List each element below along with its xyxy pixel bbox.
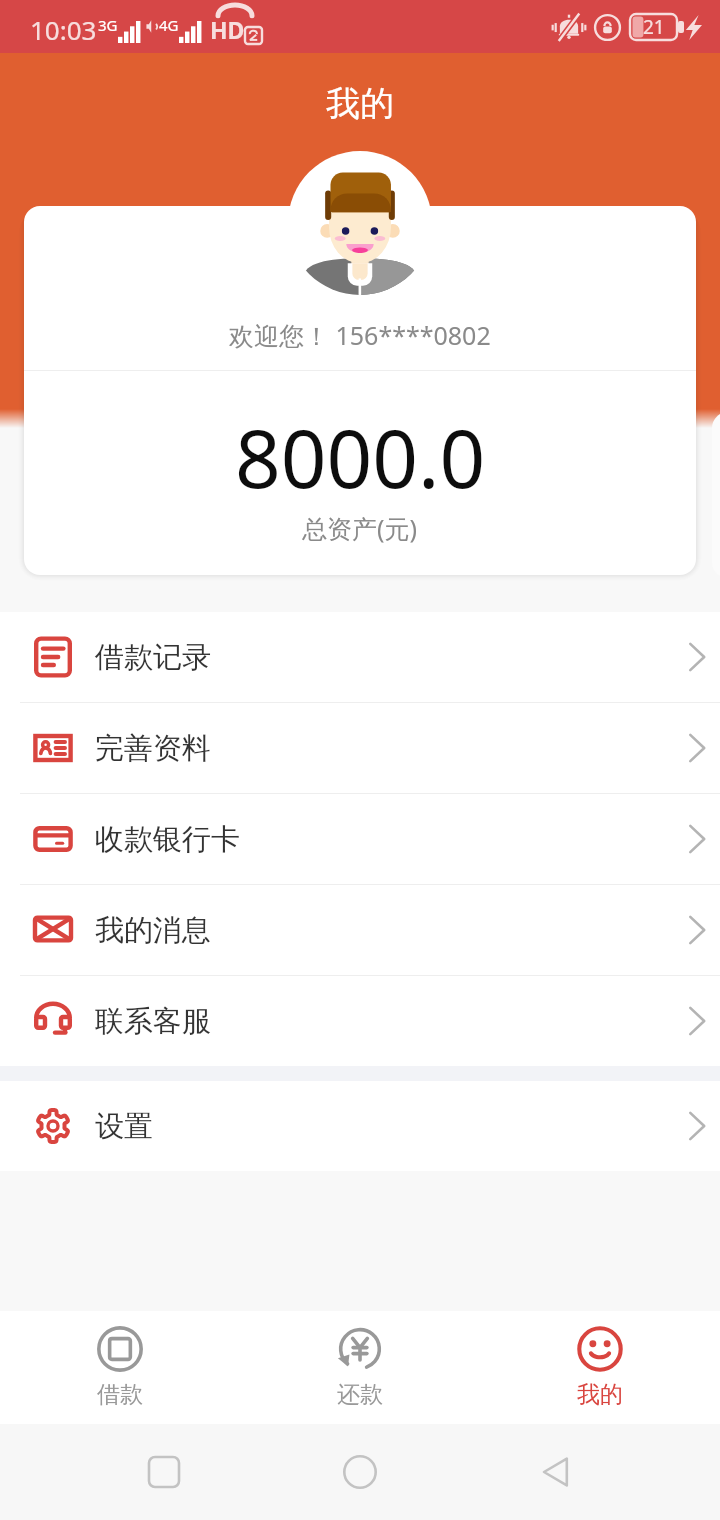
staticText: 我的 <box>326 82 394 125</box>
staticText: 设置 <box>95 1108 153 1145</box>
button[interactable]: 联系客服 <box>0 976 720 1066</box>
staticText: 借款记录 <box>95 639 211 676</box>
staticText: 我的 <box>577 1380 623 1409</box>
staticText: 借款 <box>97 1380 143 1409</box>
button[interactable]: Recents <box>124 1424 204 1520</box>
button[interactable]: 收款银行卡 <box>0 794 720 884</box>
staticText: 收款银行卡 <box>95 821 240 858</box>
staticText: 联系客服 <box>95 1003 211 1040</box>
button[interactable]: 设置 <box>0 1081 720 1171</box>
staticText: 10:03 <box>30 12 97 47</box>
staticText: HD <box>210 14 245 45</box>
button[interactable]: 还款 <box>240 1311 480 1424</box>
button[interactable]: 我的 <box>480 1311 720 1424</box>
button[interactable]: Back <box>516 1424 596 1520</box>
staticText: 21 <box>643 14 665 40</box>
staticText: 欢迎您！ 156****0802 <box>229 318 491 352</box>
staticText: 我的消息 <box>95 912 211 949</box>
staticText: 4G <box>159 15 179 35</box>
button[interactable]: 完善资料 <box>0 703 720 793</box>
button[interactable]: 我的消息 <box>0 885 720 975</box>
button[interactable]: Home <box>320 1424 400 1520</box>
staticText: 3G <box>98 15 118 35</box>
staticText: 总资产(元) <box>302 511 418 545</box>
staticText: 8000.0 <box>235 402 486 511</box>
staticText: 完善资料 <box>95 730 211 767</box>
staticText: 还款 <box>337 1380 383 1409</box>
button[interactable]: 借款 <box>0 1311 240 1424</box>
button[interactable]: 借款记录 <box>0 612 720 702</box>
